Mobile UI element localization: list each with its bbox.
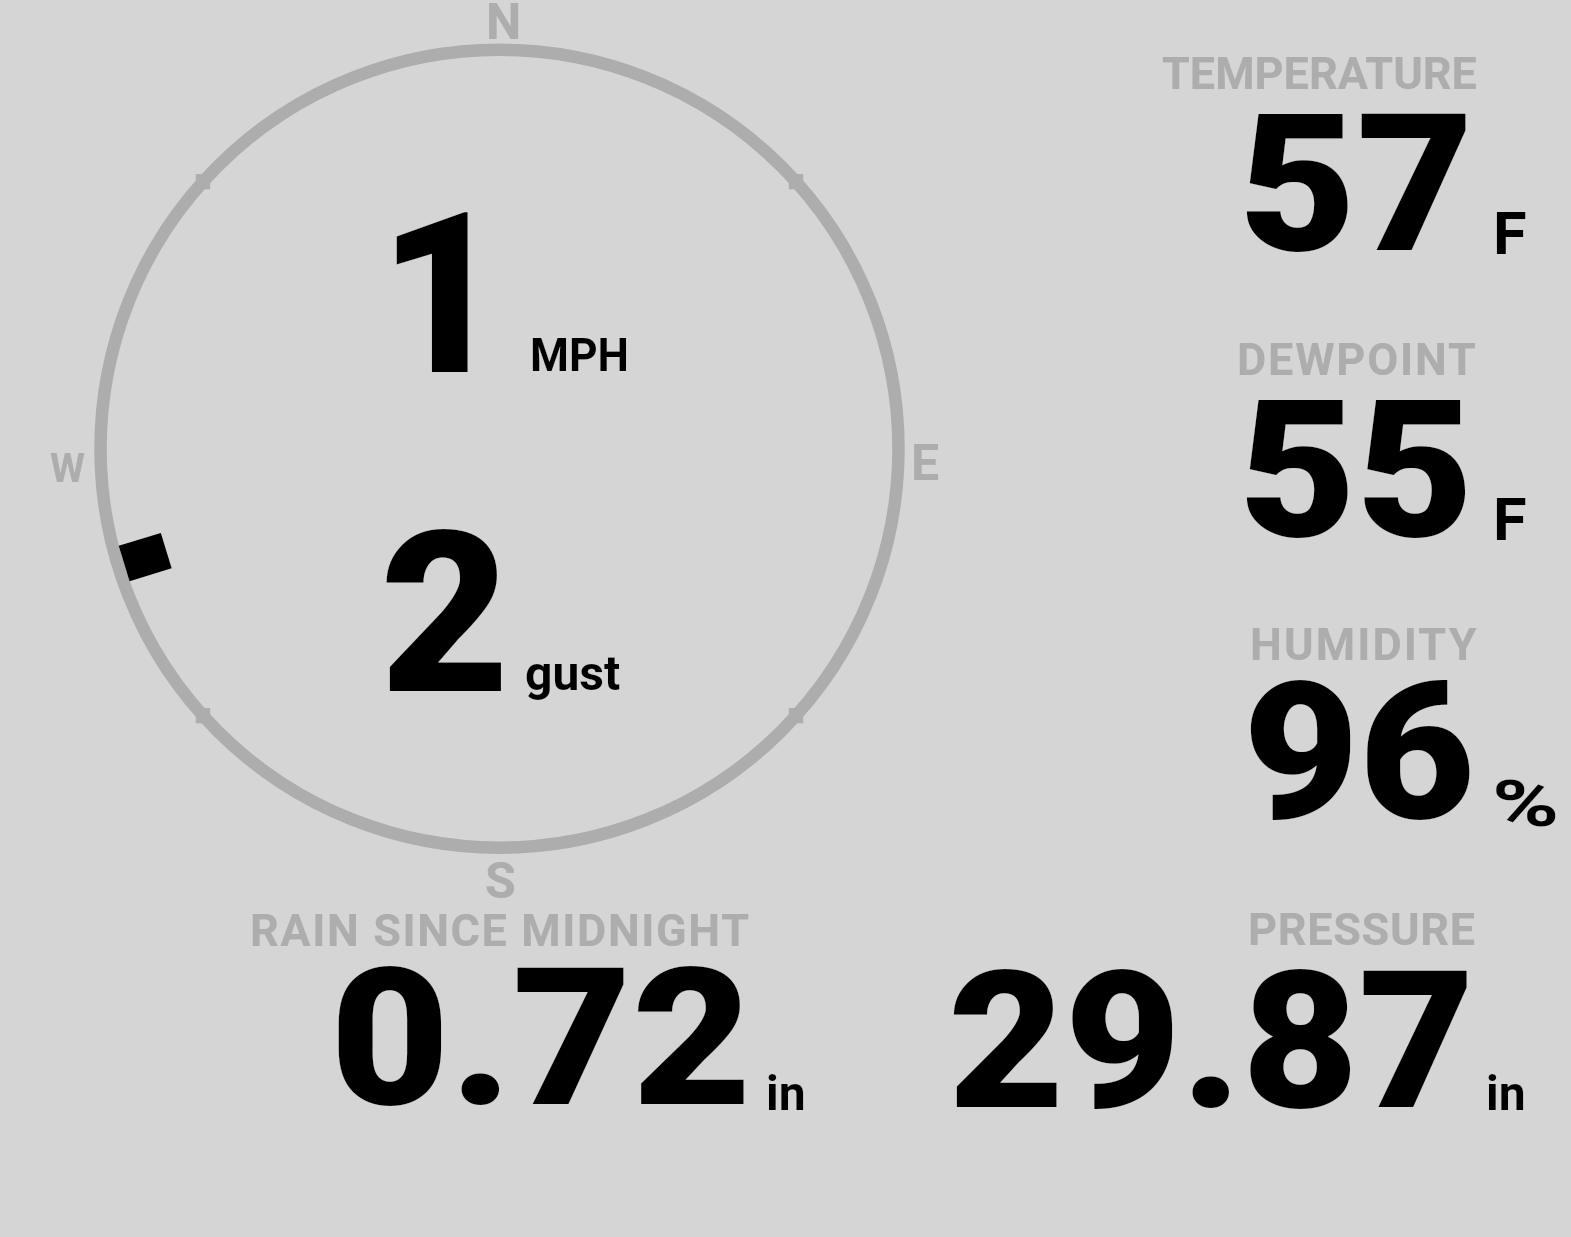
staticText: RAIN SINCE MIDNIGHT <box>250 904 751 957</box>
staticText: in <box>766 1065 806 1121</box>
staticText: 96 <box>1243 640 1476 865</box>
staticText: HUMIDITY <box>1250 618 1479 671</box>
staticText: 55 <box>1239 358 1474 583</box>
staticText: 0.72 <box>330 926 752 1151</box>
staticText: W <box>50 445 85 492</box>
staticText: E <box>911 434 940 493</box>
button[interactable]: Dewpoint 55 F <box>1150 330 1550 555</box>
staticText: 2 <box>380 483 510 746</box>
button[interactable]: Rain since midnight 0.72 in <box>240 900 820 1115</box>
staticText: PRESSURE <box>1248 903 1476 956</box>
button[interactable]: Wind speed 1 MPH, gust 2, direction west… <box>95 45 905 855</box>
staticText: gust <box>525 645 621 701</box>
staticText: F <box>1493 199 1527 268</box>
staticText: 1 <box>379 164 505 427</box>
staticText: 57 <box>1239 72 1474 297</box>
button[interactable]: Temperature 57 F <box>1150 45 1550 275</box>
staticText: DEWPOINT <box>1237 333 1478 386</box>
staticText: % <box>1492 767 1560 842</box>
staticText: S <box>485 852 516 911</box>
button[interactable]: Pressure 29.87 in <box>930 900 1540 1115</box>
button[interactable]: Humidity 96 percent <box>1150 615 1550 840</box>
staticText: MPH <box>530 328 629 382</box>
staticText: in <box>1486 1065 1526 1121</box>
staticText: F <box>1493 485 1527 554</box>
staticText: 29.87 <box>948 929 1476 1154</box>
staticText: N <box>486 0 522 52</box>
staticText: TEMPERATURE <box>1162 47 1477 100</box>
